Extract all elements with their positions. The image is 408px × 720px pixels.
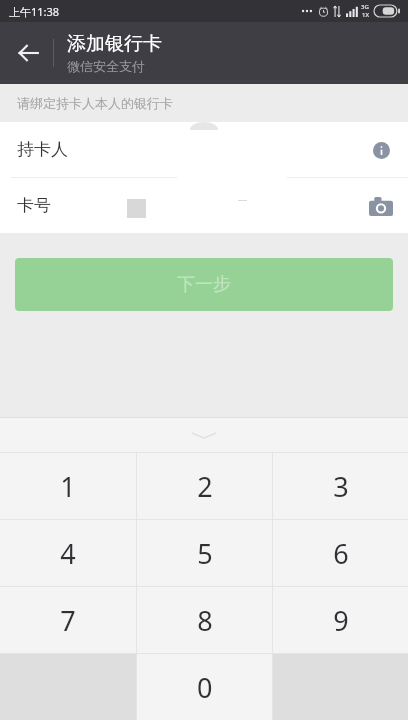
button[interactable]: 3 xyxy=(273,453,408,519)
staticText: 7 xyxy=(60,602,76,639)
staticText: 1 xyxy=(60,468,76,505)
staticText: 9 xyxy=(333,602,349,639)
staticText: 下一步 xyxy=(177,273,231,296)
button[interactable]: 8 xyxy=(137,587,272,653)
staticText: 3 xyxy=(333,468,349,505)
button[interactable]: 4 xyxy=(0,520,136,586)
button[interactable]: 0 xyxy=(137,654,272,720)
button[interactable]: 5 xyxy=(137,520,272,586)
button[interactable]: 下一步 xyxy=(15,258,393,311)
staticText: 请绑定持卡人本人的银行卡 xyxy=(17,95,173,111)
staticText: 2 xyxy=(197,468,213,505)
staticText: 添加银行卡 xyxy=(67,32,162,56)
button[interactable]: 持卡人 xyxy=(0,122,408,177)
staticText: 0 xyxy=(197,669,213,706)
staticText: 6 xyxy=(333,535,349,572)
staticText: 3G xyxy=(361,3,369,11)
staticText: 5 xyxy=(197,535,213,572)
button[interactable]: Scan card with camera xyxy=(364,189,398,223)
staticText: 4 xyxy=(60,535,76,572)
button[interactable]: 9 xyxy=(273,587,408,653)
staticText: 8 xyxy=(197,602,213,639)
staticText: 上午11:38 xyxy=(9,4,60,19)
button[interactable]: 6 xyxy=(273,520,408,586)
button[interactable]: 2 xyxy=(137,453,272,519)
button[interactable]: 1 xyxy=(0,453,136,519)
staticText: 微信安全支付 xyxy=(67,58,145,74)
button[interactable]: Info xyxy=(364,133,398,167)
button[interactable]: 7 xyxy=(0,587,136,653)
staticText: 持卡人 xyxy=(17,139,68,160)
staticText: 卡号 xyxy=(17,195,51,216)
button[interactable]: 卡号 xyxy=(0,178,408,233)
staticText: 1X xyxy=(362,11,369,19)
button[interactable]: Back xyxy=(0,22,56,84)
